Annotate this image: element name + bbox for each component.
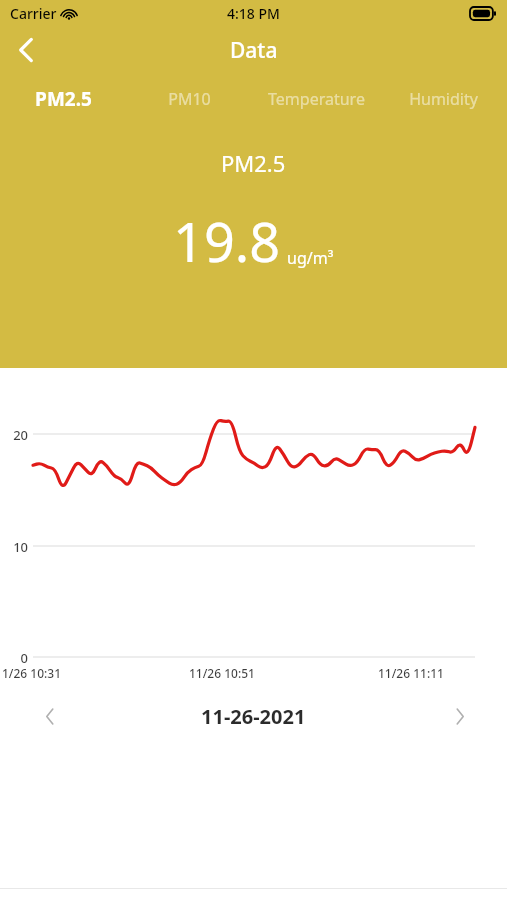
button[interactable]: PM2.5 — [0, 82, 126, 116]
staticText: 10 — [13, 538, 28, 556]
staticText: Temperature — [268, 88, 365, 110]
button[interactable]: PM10 — [126, 82, 253, 116]
button[interactable]: Previous day — [30, 696, 70, 736]
staticText: 4:18 PM — [227, 4, 280, 23]
staticText: 20 — [13, 426, 28, 444]
staticText: 1/26 10:31 — [2, 665, 62, 681]
staticText: 11/26 10:51 — [189, 665, 255, 681]
staticText: Carrier — [10, 4, 57, 23]
button[interactable]: Next day — [440, 696, 480, 736]
button[interactable]: Humidity — [380, 82, 507, 116]
staticText: 11-26-2021 — [201, 703, 306, 730]
button[interactable]: Back — [0, 26, 52, 74]
staticText: PM2.5 — [221, 148, 286, 178]
staticText: 0 — [20, 649, 28, 667]
staticText: ug/m³ — [287, 247, 334, 269]
staticText: PM2.5 — [35, 86, 92, 112]
staticText: 11/26 11:11 — [378, 665, 444, 681]
staticText: Data — [230, 36, 278, 65]
staticText: 19.8 — [173, 204, 281, 278]
staticText: Humidity — [409, 88, 478, 110]
staticText: PM10 — [168, 88, 211, 110]
button[interactable]: Temperature — [253, 82, 380, 116]
